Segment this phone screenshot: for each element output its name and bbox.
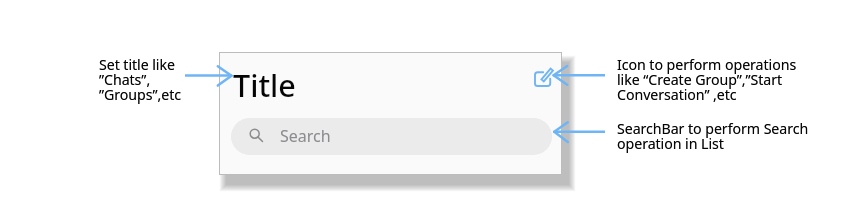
staticText: SearchBar to perform Search operation in… <box>617 119 809 153</box>
staticText: Title <box>233 64 296 106</box>
staticText: Icon to perform operations like “Create … <box>617 55 797 104</box>
staticText: Search <box>280 125 331 147</box>
button[interactable]: Search <box>231 118 552 155</box>
staticText: SearchBar to perform Search operation in… <box>617 119 809 153</box>
button[interactable]: Create new conversation <box>529 63 557 91</box>
staticText: Icon to perform operations like “Create … <box>617 55 797 104</box>
staticText: Set title like ”Chats”, ”Groups”,etc <box>99 55 181 104</box>
staticText: Set title like ”Chats”, ”Groups”,etc <box>99 55 181 104</box>
